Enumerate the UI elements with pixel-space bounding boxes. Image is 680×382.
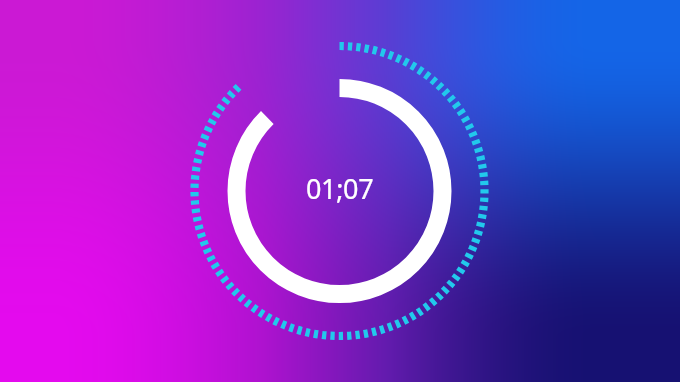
staticText: 01;07 — [306, 170, 374, 207]
button[interactable]: Pause timer — [228, 79, 452, 303]
